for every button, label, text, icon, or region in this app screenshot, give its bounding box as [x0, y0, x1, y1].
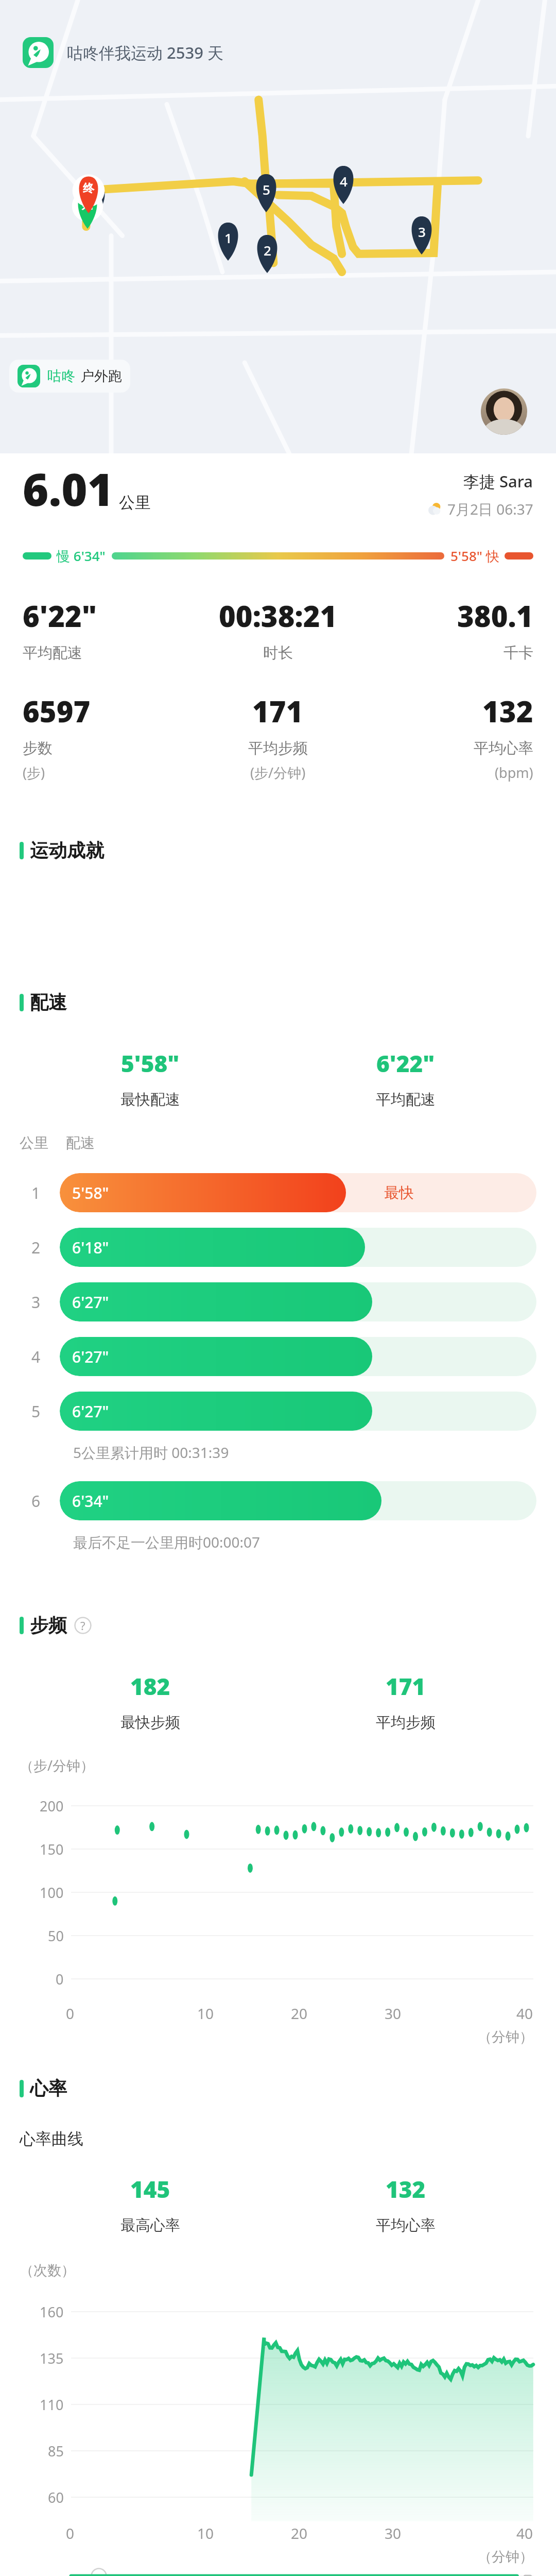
staticText: 平均配速 [376, 1090, 436, 1109]
staticText: 3 [31, 1292, 41, 1313]
staticText: （次数） [20, 2262, 75, 2279]
staticText: 咕咚 [47, 367, 75, 385]
button[interactable]: 配速 [20, 991, 556, 1014]
staticText: 步数 [23, 739, 53, 758]
button[interactable]: 步频 [20, 1614, 556, 1637]
button[interactable]: Help [74, 1617, 92, 1634]
staticText: （步/分钟） [20, 1756, 95, 1775]
staticText: 平均心率 [474, 739, 533, 758]
staticText: 182 [130, 1671, 170, 1702]
staticText: ? [80, 1618, 85, 1633]
staticText: 10 [197, 2523, 214, 2543]
staticText: 4 [31, 1346, 41, 1367]
button[interactable]: 2 [20, 1228, 536, 1267]
staticText: 0 [66, 2004, 75, 2023]
staticText: 千卡 [503, 643, 533, 663]
staticText: 6'34" [72, 1490, 109, 1512]
staticText: 平均步频 [376, 1713, 436, 1732]
staticText: 40 [516, 2004, 533, 2023]
staticText: 心率 [30, 2077, 67, 2100]
staticText: 2 [264, 241, 271, 259]
staticText: 终 [83, 181, 94, 196]
staticText: 160 [40, 2302, 64, 2321]
staticText: 40 [516, 2523, 533, 2543]
staticText: 5'58" [72, 1182, 109, 1204]
staticText: 6'27" [72, 1346, 109, 1367]
staticText: 6'18" [72, 1237, 109, 1258]
staticText: 5'58" 快 [450, 547, 499, 565]
staticText: 公里 [20, 1134, 48, 1152]
staticText: 5'58" [121, 1048, 180, 1079]
staticText: (bpm) [495, 763, 533, 782]
staticText: 0 [66, 2523, 75, 2543]
staticText: 平均心率 [376, 2216, 436, 2235]
staticText: 6'27" [72, 1401, 109, 1422]
staticText: 2 [31, 1237, 41, 1258]
staticText: 户外跑 [80, 367, 122, 385]
staticText: 10 [197, 2004, 214, 2023]
staticText: 公里 [119, 493, 151, 513]
staticText: (步/分钟) [250, 763, 306, 782]
staticText: 慢 6'34" [57, 547, 106, 565]
staticText: 110 [40, 2395, 64, 2414]
staticText: 00:38:21 [219, 596, 337, 635]
staticText: 配速 [30, 991, 67, 1014]
staticText: 60 [48, 2488, 64, 2507]
staticText: 200 [40, 1797, 64, 1816]
staticText: 心率曲线 [20, 2129, 83, 2149]
staticText: 1 [224, 229, 232, 247]
staticText: 咕咚伴我运动 2539 天 [67, 42, 224, 63]
staticText: 132 [386, 2174, 426, 2205]
button[interactable]: 4 [20, 1337, 536, 1376]
button[interactable]: 心率 [20, 2077, 556, 2100]
staticText: 最快 [384, 1183, 414, 1202]
staticText: 6'22" [376, 1048, 435, 1079]
staticText: 最快配速 [120, 1090, 180, 1109]
staticText: 5 [31, 1401, 41, 1422]
staticText: （分钟） [478, 2028, 533, 2046]
staticText: 始 [82, 198, 93, 212]
staticText: 运动成就 [30, 839, 104, 862]
staticText: 5 [263, 180, 270, 198]
staticText: 时长 [263, 643, 293, 663]
button[interactable]: 咕咚伴我运动 2539 天 [23, 37, 224, 68]
staticText: 50 [48, 1926, 64, 1945]
staticText: 20 [291, 2523, 308, 2543]
staticText: 6597 [23, 691, 91, 731]
staticText: 步频 [30, 1614, 67, 1637]
button[interactable]: User avatar [481, 388, 527, 435]
button[interactable]: 3 [20, 1282, 536, 1321]
staticText: 132 [482, 691, 533, 731]
staticText: 100 [40, 1883, 64, 1902]
staticText: 6'22" [23, 596, 97, 635]
staticText: 6.01 [23, 459, 114, 519]
staticText: 30 [385, 2004, 402, 2023]
button[interactable]: 运动成就 [20, 839, 556, 862]
staticText: 配速 [66, 1134, 95, 1152]
staticText: 4 [340, 172, 347, 190]
staticText: 0 [56, 1970, 64, 1989]
button[interactable]: 6 [20, 1481, 536, 1520]
staticText: （分钟） [478, 2548, 533, 2566]
staticText: 145 [130, 2174, 170, 2205]
staticText: 6'27" [72, 1292, 109, 1313]
button[interactable]: 5 [20, 1392, 536, 1431]
staticText: (步) [23, 763, 45, 782]
staticText: 30 [385, 2523, 402, 2543]
staticText: 1 [31, 1182, 41, 1204]
staticText: 李捷 Sara [463, 470, 533, 492]
staticText: 20 [291, 2004, 308, 2023]
staticText: 3 [418, 223, 426, 241]
staticText: 7月2日 06:37 [447, 499, 533, 519]
staticText: 平均配速 [23, 643, 82, 663]
staticText: 171 [386, 1671, 426, 1702]
staticText: 最快步频 [120, 1713, 180, 1732]
staticText: 6 [31, 1490, 41, 1512]
staticText: 5公里累计用时 00:31:39 [73, 1443, 229, 1462]
staticText: 171 [252, 691, 303, 731]
button[interactable]: 咕咚 [18, 365, 122, 387]
staticText: 135 [40, 2349, 64, 2368]
staticText: 150 [40, 1840, 64, 1859]
staticText: 85 [48, 2442, 64, 2461]
button[interactable]: 1 [20, 1173, 536, 1212]
